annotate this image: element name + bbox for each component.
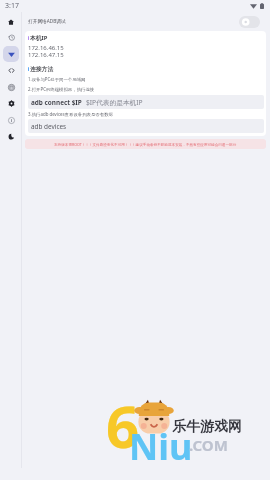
staticText: 2.打开PC的终端模拟器，执行连接 — [28, 86, 95, 92]
staticText: 3:17 — [5, 1, 19, 11]
button[interactable]: Info — [3, 112, 19, 128]
staticText: adb connect $IP — [31, 98, 82, 107]
staticText: 1.设备与PC处于同一个局域网 — [28, 76, 86, 82]
staticText: .COM — [189, 435, 228, 455]
staticText: Niu — [129, 422, 193, 471]
staticText: $IP代表的是本机IP — [86, 98, 143, 107]
button[interactable]: Home — [0, 12, 21, 31]
button[interactable]: Settings — [3, 95, 19, 111]
button[interactable]: Dark mode — [3, 128, 19, 144]
staticText: 连接方法 — [30, 65, 54, 72]
button[interactable]: History — [3, 29, 19, 45]
staticText: 172.16.46.15 — [28, 44, 64, 52]
button[interactable]: WiFi — [3, 46, 19, 62]
staticText: 172.16.47.15 — [28, 51, 64, 59]
staticText: 打开网络ADB调试 — [28, 18, 66, 24]
staticText: adb devices — [31, 122, 67, 131]
staticText: 6 — [106, 386, 140, 465]
button[interactable]: Developer options — [3, 62, 19, 78]
staticText: 支持版本需ROOT！！！文件路径变化不可用！！！建议手动备份不影响原本安装，不然… — [54, 142, 237, 147]
staticText: 本机IP — [30, 34, 48, 42]
button[interactable]: Apps — [3, 79, 19, 95]
button[interactable]: adb devices — [28, 119, 264, 133]
button[interactable]: adb connect $IP — [28, 95, 264, 109]
staticText: 乐牛游戏网 — [172, 418, 242, 436]
staticText: 3.执行adb devices查看设备列表是否有数据 — [28, 111, 113, 117]
button[interactable]: Toggle network ADB — [239, 16, 260, 28]
